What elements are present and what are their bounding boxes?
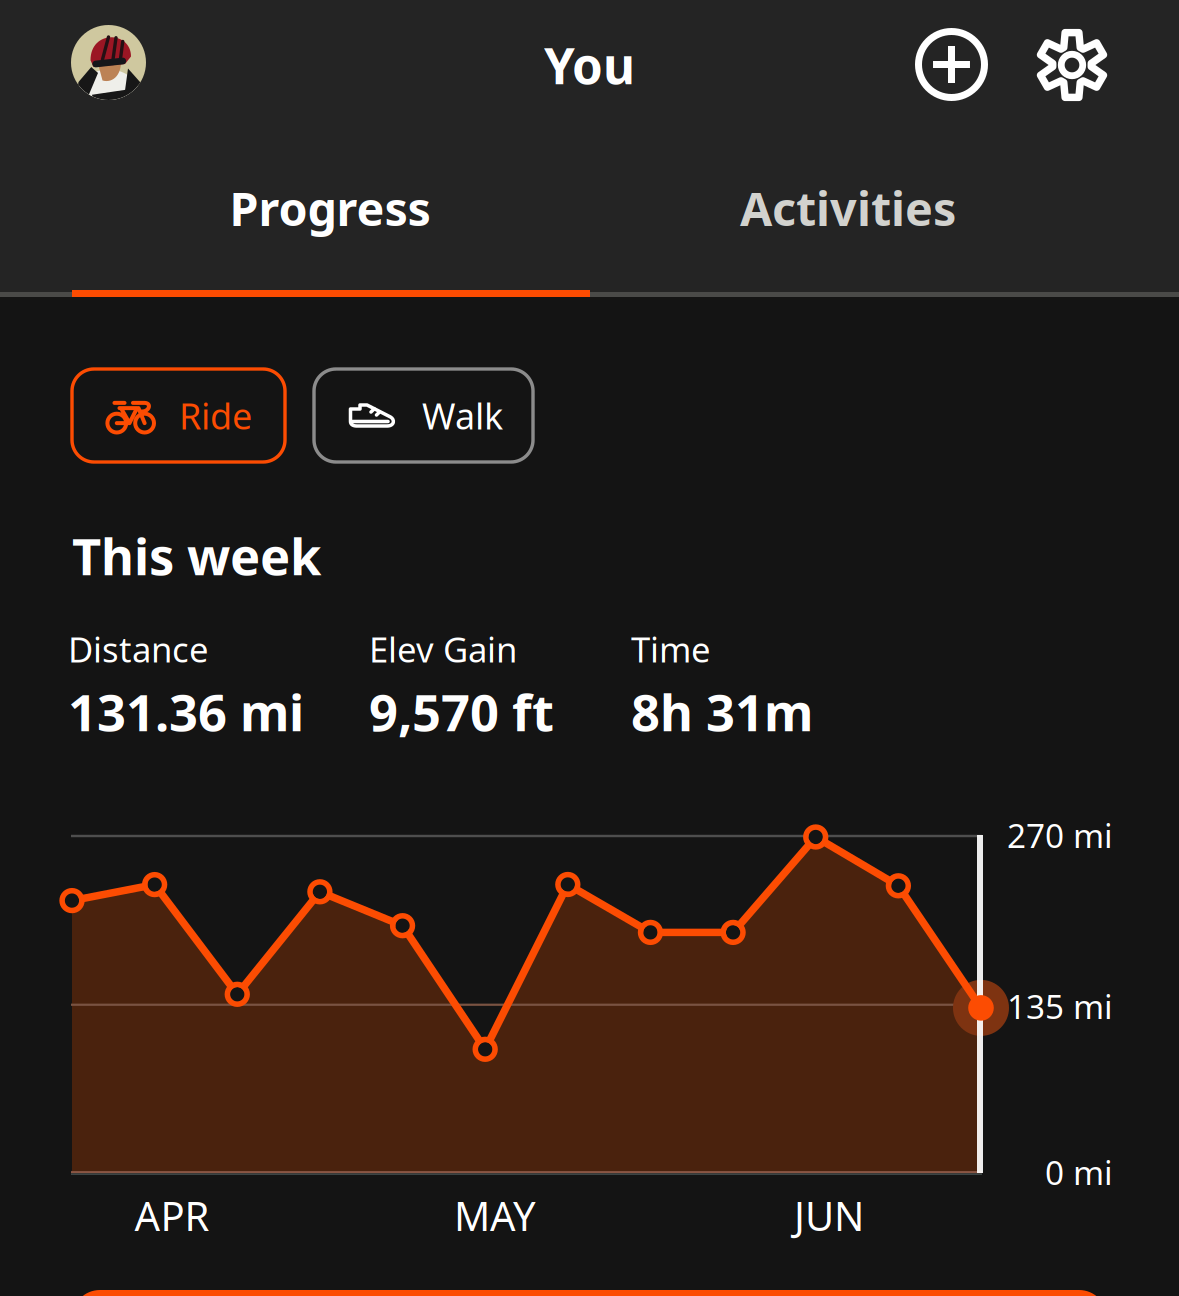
staticText: This week xyxy=(72,522,321,589)
button[interactable]: Profile xyxy=(71,25,146,100)
staticText: 270 mi xyxy=(1007,813,1113,857)
staticText: Elev Gain xyxy=(369,626,517,672)
button[interactable]: Activities xyxy=(589,148,1107,268)
staticText: 9,570 ft xyxy=(369,678,554,745)
staticText: 131.36 mi xyxy=(68,678,304,745)
button[interactable]: Walk xyxy=(314,369,533,462)
staticText: 8h 31m xyxy=(631,678,813,745)
staticText: MAY xyxy=(454,1189,536,1242)
staticText: Distance xyxy=(68,626,209,672)
staticText: APR xyxy=(134,1189,209,1242)
staticText: Time xyxy=(631,626,711,672)
button[interactable]: Settings xyxy=(1029,22,1115,108)
staticText: JUN xyxy=(794,1189,864,1242)
staticText: Activities xyxy=(740,177,956,239)
staticText: Ride xyxy=(179,392,252,439)
staticText: Walk xyxy=(422,392,503,439)
staticText: 135 mi xyxy=(1007,984,1113,1028)
button[interactable]: Record activity xyxy=(915,28,988,101)
staticText: 0 mi xyxy=(1045,1150,1113,1194)
staticText: Progress xyxy=(229,177,430,239)
button[interactable]: Ride xyxy=(72,369,285,462)
staticText: You xyxy=(544,32,635,98)
button[interactable]: Progress xyxy=(71,148,589,268)
